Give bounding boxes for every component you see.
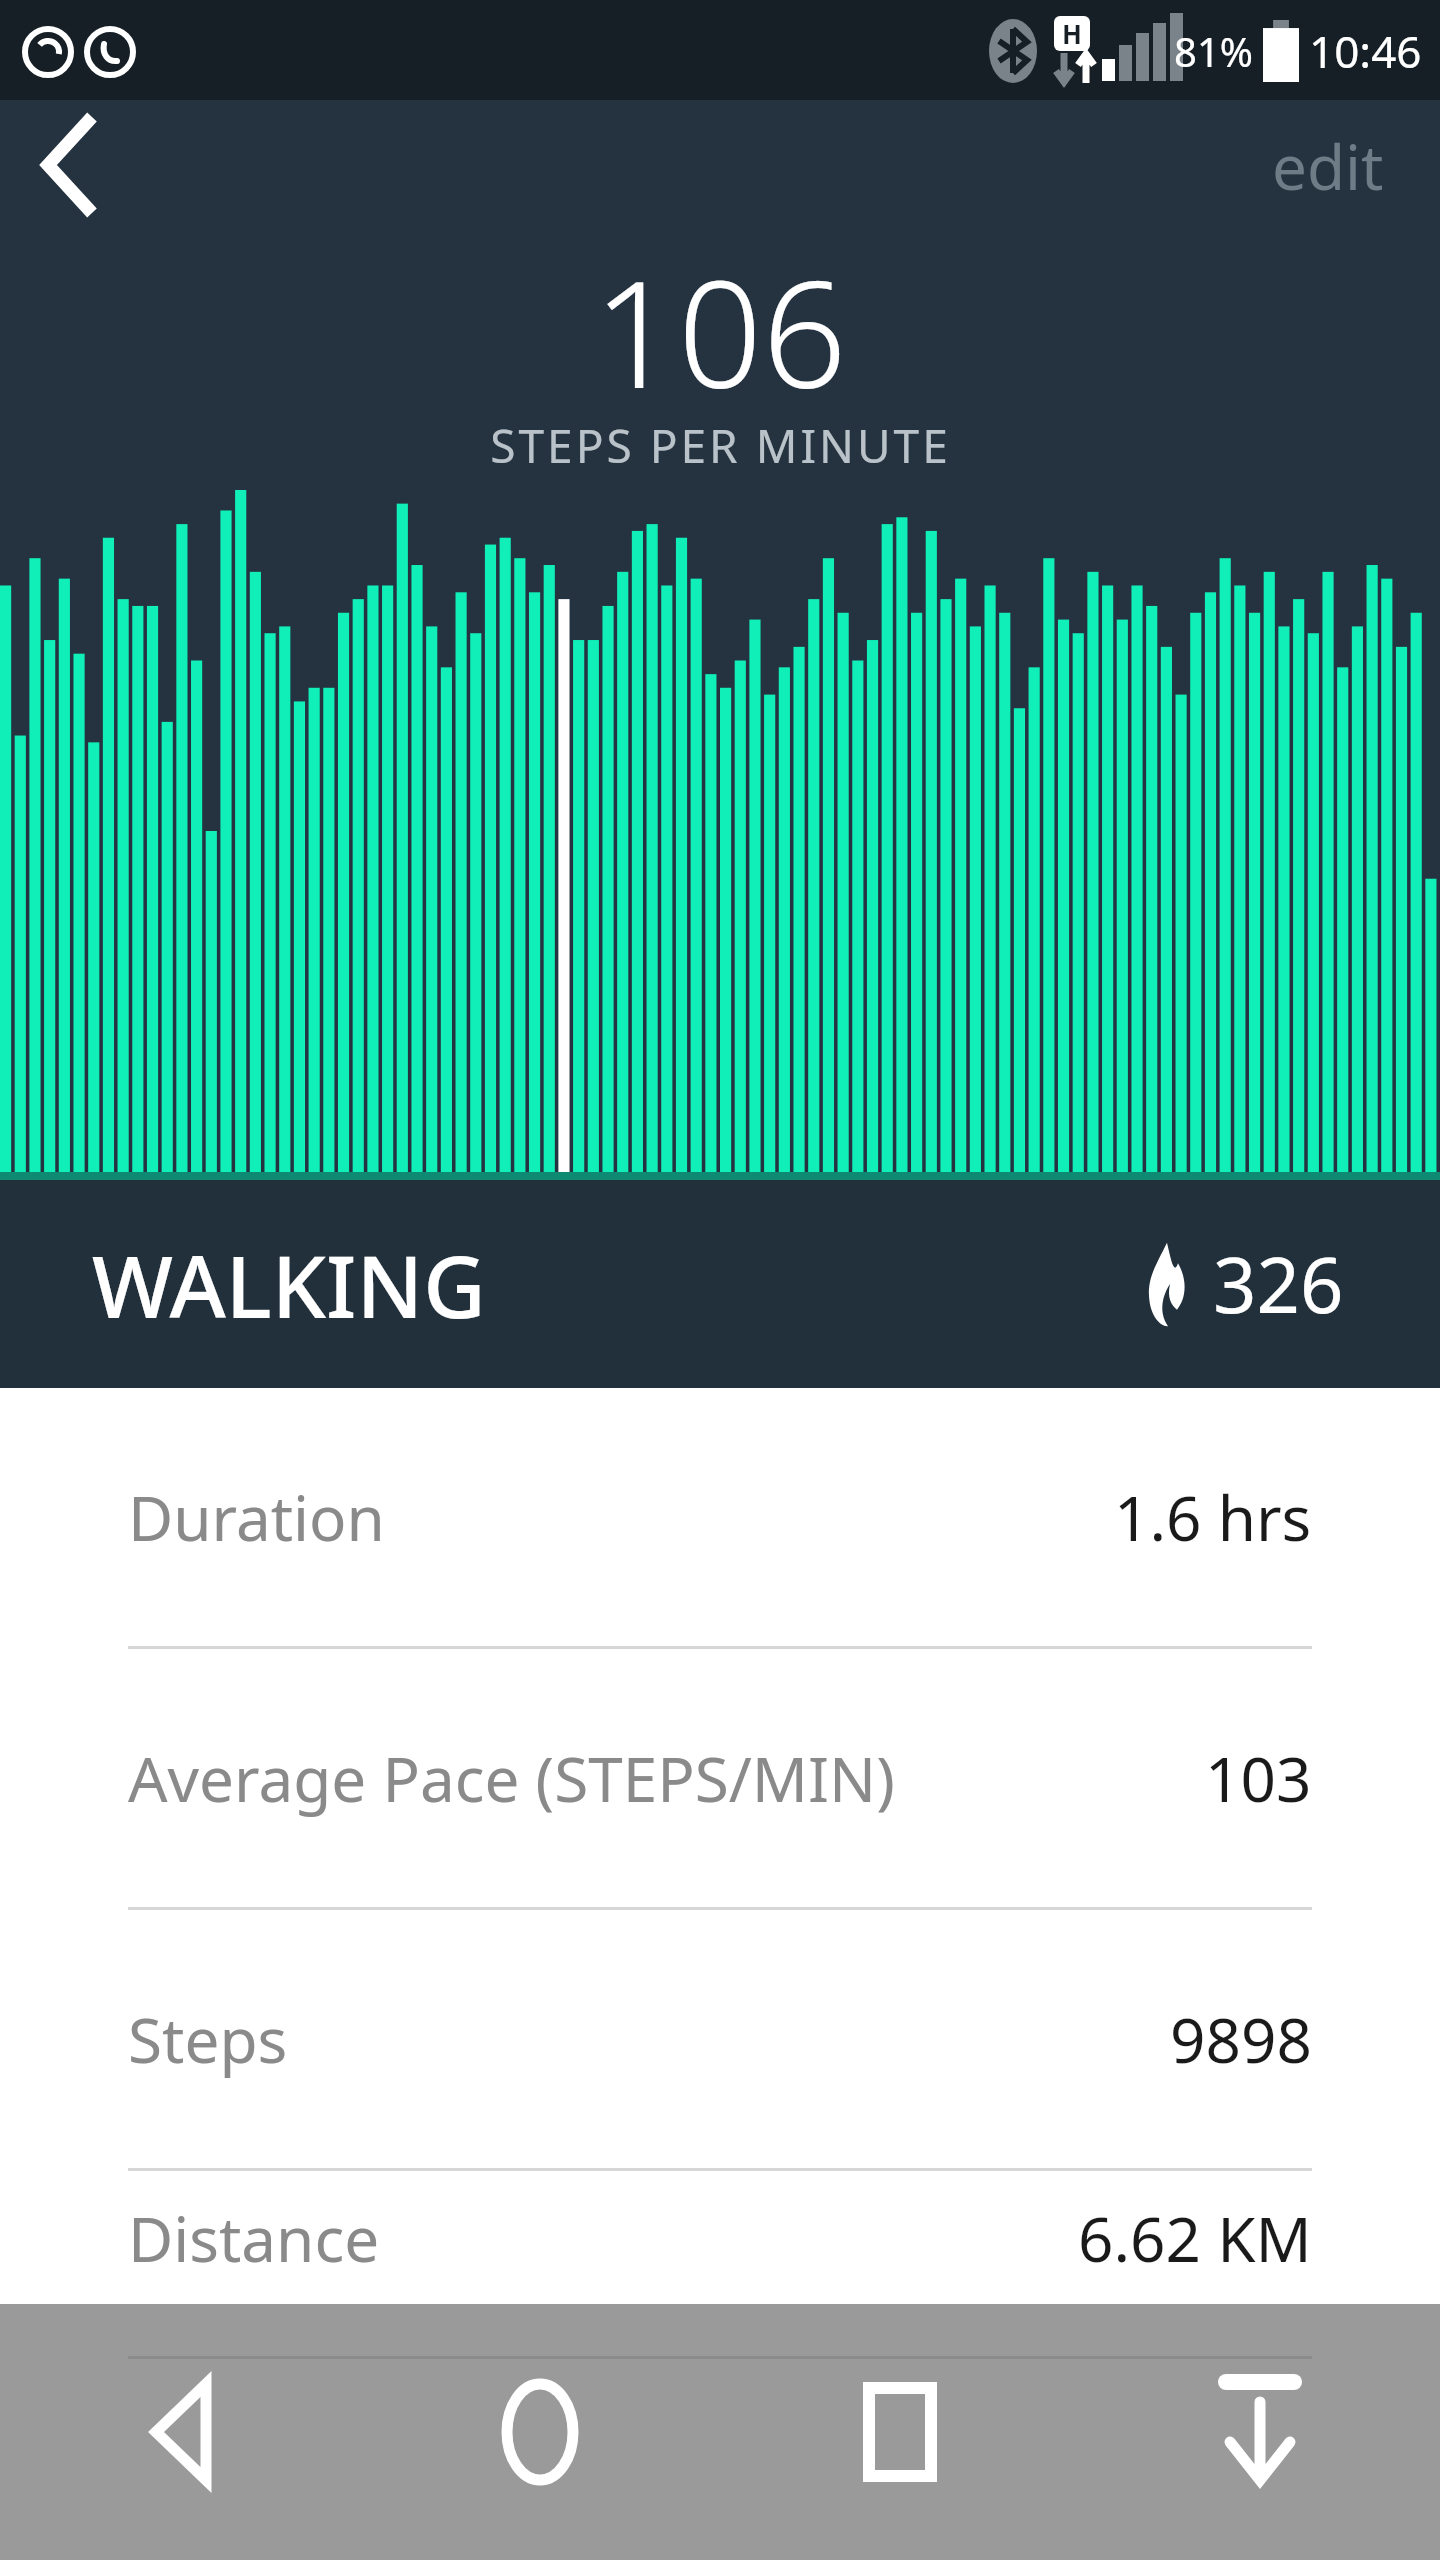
button[interactable]: Duration [0, 1388, 1440, 1646]
button[interactable]: Average Pace (STEPS/MIN) [0, 1649, 1440, 1907]
staticText: 6.62 KM [1078, 2196, 1312, 2280]
staticText: WALKING [92, 1226, 486, 1343]
staticText: 9898 [1170, 1997, 1312, 2081]
staticText: H [1062, 16, 1082, 51]
staticText: Distance [128, 2196, 380, 2280]
button[interactable]: edit [1216, 100, 1440, 230]
button[interactable]: Back [0, 2304, 360, 2560]
button[interactable]: Back [0, 100, 150, 230]
staticText: Average Pace (STEPS/MIN) [128, 1736, 895, 1820]
staticText: 1.6 hrs [1114, 1475, 1312, 1559]
button[interactable]: Recents [720, 2304, 1080, 2560]
staticText: STEPS PER MINUTE [490, 414, 951, 477]
staticText: edit [1272, 124, 1384, 206]
staticText: 106 [593, 230, 847, 410]
staticText: Steps [128, 1997, 288, 2081]
staticText: 81% [1174, 24, 1253, 78]
button[interactable]: Steps [0, 1910, 1440, 2168]
staticText: 10:46 [1309, 21, 1422, 81]
staticText: Duration [128, 1475, 385, 1559]
button[interactable]: Home [360, 2304, 720, 2560]
button[interactable]: Distance [0, 2171, 1440, 2304]
staticText: 103 [1205, 1736, 1312, 1820]
button[interactable]: Hide navigation bar [1080, 2304, 1440, 2560]
staticText: 326 [1213, 1232, 1344, 1336]
